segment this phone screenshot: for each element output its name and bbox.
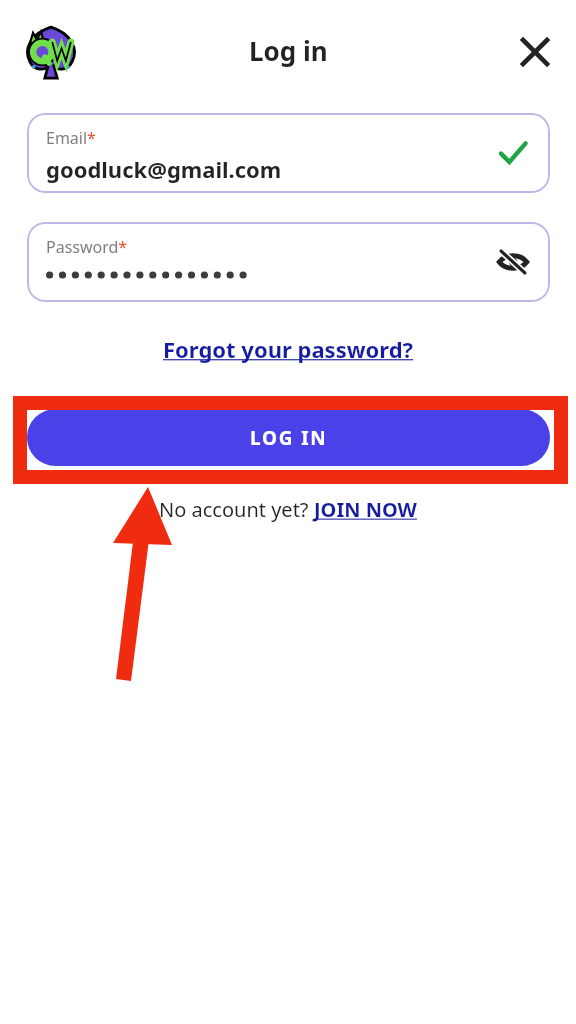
- button[interactable]: Forgot your password?: [155, 330, 422, 368]
- staticText: goodluck@gmail.com: [46, 154, 282, 184]
- staticText: JOIN NOW: [314, 496, 417, 523]
- button[interactable]: App logo: [20, 21, 82, 83]
- button[interactable]: LOG IN: [27, 409, 550, 466]
- button[interactable]: Show password: [490, 239, 536, 285]
- staticText: Email*: [46, 127, 96, 149]
- button[interactable]: Email*: [27, 113, 550, 193]
- staticText: Password*: [46, 236, 128, 258]
- button[interactable]: Close: [511, 28, 559, 76]
- button[interactable]: Email valid: [490, 130, 536, 176]
- button[interactable]: JOIN NOW: [314, 496, 417, 523]
- button[interactable]: Password*: [27, 222, 550, 302]
- staticText: Forgot your password?: [163, 334, 414, 364]
- staticText: Log in: [249, 33, 328, 68]
- staticText: LOG IN: [250, 425, 328, 451]
- staticText: No account yet?: [159, 496, 314, 523]
